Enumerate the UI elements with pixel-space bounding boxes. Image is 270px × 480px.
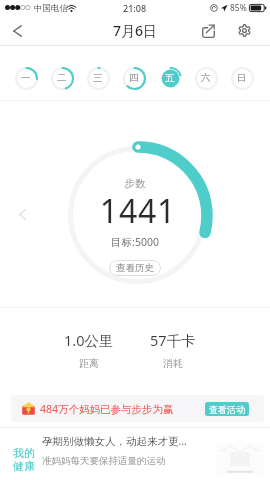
staticText: 57千卡 — [150, 330, 196, 350]
staticText: 四 — [129, 72, 139, 84]
button[interactable]: 我的 — [0, 428, 270, 480]
button[interactable]: Settings — [228, 16, 260, 45]
button[interactable]: 二 — [46, 62, 78, 94]
button[interactable]: 三 — [82, 62, 114, 94]
staticText: 1.0公里 — [64, 330, 114, 350]
staticText: 查看历史 — [116, 262, 154, 274]
button[interactable]: Share — [192, 16, 224, 45]
staticText: 消耗 — [163, 357, 183, 370]
button[interactable]: Previous day — [8, 200, 36, 228]
staticText: 484万个妈妈已参与步步为赢 — [40, 402, 174, 416]
button[interactable]: 查看活动 — [205, 402, 249, 416]
staticText: 日 — [237, 72, 247, 84]
staticText: 中国电信 — [34, 3, 68, 14]
staticText: 孕期别做懒女人，动起来才更… — [42, 434, 187, 448]
button[interactable]: 484万个妈妈已参与步步为赢 — [11, 395, 264, 422]
staticText: 健康 — [13, 459, 35, 473]
staticText: 我的 — [13, 446, 35, 460]
staticText: 距离 — [79, 357, 99, 370]
staticText: 步数 — [0, 177, 270, 190]
button[interactable]: Back — [2, 16, 32, 45]
button[interactable]: 六 — [190, 62, 222, 94]
staticText: 21:08 — [123, 2, 147, 14]
staticText: 1441 — [3, 189, 270, 233]
button[interactable]: 四 — [118, 62, 150, 94]
staticText: 二 — [57, 72, 67, 84]
staticText: 三 — [93, 72, 103, 84]
staticText: 85% — [230, 2, 247, 14]
staticText: 五 — [165, 72, 175, 84]
button[interactable]: 五 — [154, 62, 186, 94]
staticText: 准妈妈每天要保持适量的运动 — [42, 455, 166, 467]
staticText: 六 — [201, 72, 211, 84]
button[interactable]: 查看历史 — [109, 260, 161, 276]
staticText: 查看活动 — [209, 404, 245, 415]
button[interactable]: 日 — [226, 62, 258, 94]
button[interactable]: 57千卡 — [133, 330, 213, 374]
button[interactable]: 1.0公里 — [49, 330, 129, 374]
button[interactable]: 一 — [10, 62, 42, 94]
staticText: 目标:5000 — [0, 235, 270, 249]
staticText: 7月6日 — [113, 21, 158, 40]
staticText: 一 — [21, 72, 31, 84]
